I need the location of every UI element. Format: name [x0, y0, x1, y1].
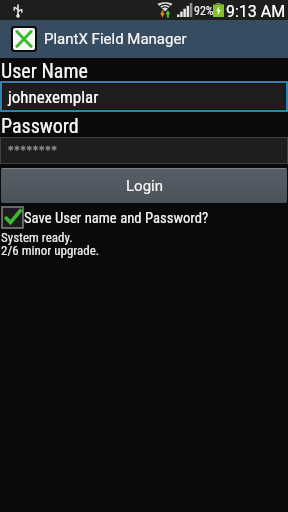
- staticText: johnexemplar: [8, 87, 99, 107]
- other: Wi-Fi: [157, 1, 173, 18]
- button[interactable]: johnexemplar: [3, 84, 285, 109]
- other: Battery charging 92%: [213, 3, 224, 17]
- button[interactable]: Save User name and Password?: [0, 206, 288, 228]
- staticText: 9:13 AM: [226, 2, 286, 21]
- other: Cellular signal: [177, 3, 193, 17]
- staticText: Password: [1, 114, 79, 137]
- other: USB connected: [13, 3, 23, 17]
- staticText: PlantX Field Manager: [44, 30, 187, 48]
- staticText: Save User name and Password?: [24, 209, 209, 226]
- staticText: User Name: [1, 59, 88, 82]
- staticText: 2/6 minor upgrade.: [1, 243, 100, 258]
- staticText: 92%: [194, 4, 214, 18]
- button[interactable]: Login: [1, 168, 287, 203]
- staticText: Login: [126, 177, 163, 195]
- staticText: System ready.: [1, 230, 73, 245]
- button[interactable]: [0, 137, 288, 164]
